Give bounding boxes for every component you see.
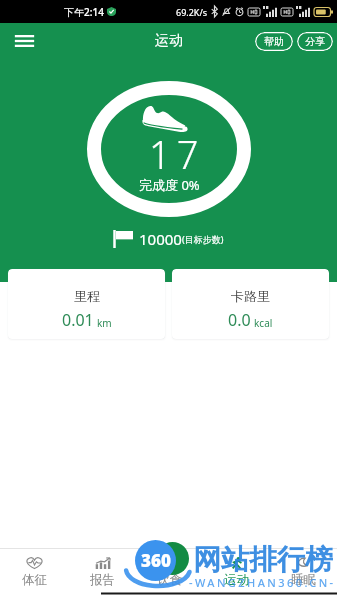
- staticText: 完成度 0%: [139, 176, 200, 194]
- staticText: 睡眠: [291, 572, 316, 588]
- staticText: 体征: [22, 572, 47, 588]
- staticText: 10000: [139, 229, 182, 249]
- staticText: 分享: [305, 35, 325, 48]
- staticText: -WANGZHAN360.CN-: [189, 575, 336, 590]
- staticText: (目标步数): [182, 233, 224, 245]
- staticText: 报告: [90, 572, 115, 588]
- staticText: 帮助: [264, 35, 284, 48]
- button[interactable]: 报告: [68, 549, 136, 600]
- staticText: 69.2K/s: [176, 6, 208, 18]
- button[interactable]: 体征: [0, 549, 68, 600]
- button[interactable]: 帮助: [255, 32, 293, 51]
- staticText: 里程: [74, 288, 100, 304]
- button[interactable]: 饮食: [136, 549, 203, 600]
- staticText: 0.01: [62, 309, 94, 331]
- staticText: 下午2:14: [64, 5, 104, 19]
- staticText: 运动: [155, 32, 183, 50]
- button[interactable]: Menu: [7, 26, 41, 56]
- button[interactable]: 卡路里: [172, 269, 329, 339]
- button[interactable]: 里程: [8, 269, 165, 339]
- button[interactable]: 运动: [203, 549, 270, 600]
- staticText: 饮食: [157, 572, 182, 588]
- button[interactable]: 睡眠: [270, 549, 337, 600]
- staticText: 运动: [224, 572, 249, 588]
- staticText: 360: [141, 549, 171, 572]
- staticText: 网站排行榜: [193, 542, 333, 577]
- button[interactable]: 分享: [297, 32, 333, 51]
- staticText: km: [97, 316, 112, 330]
- staticText: 0.0: [228, 309, 251, 331]
- staticText: kcal: [254, 316, 273, 330]
- staticText: 17: [149, 128, 205, 180]
- staticText: 卡路里: [231, 288, 270, 304]
